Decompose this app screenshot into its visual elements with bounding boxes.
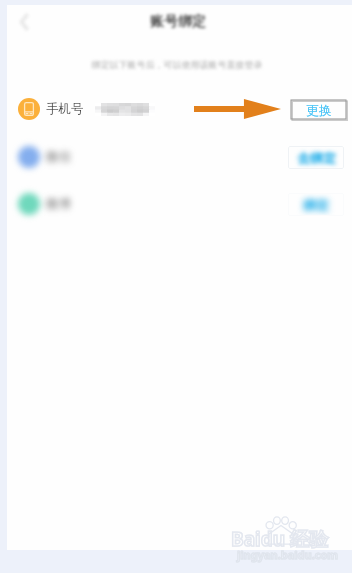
staticText: 绑定 [303, 197, 329, 213]
staticText: Baidu 经验 [231, 526, 328, 552]
staticText: jingyan.baidu.com [237, 547, 339, 562]
button[interactable]: 更换 [294, 98, 344, 121]
button[interactable]: 手机号 [7, 87, 352, 131]
staticText: 更换 [306, 102, 332, 118]
button[interactable]: 绑定 [288, 193, 344, 216]
staticText: 去绑定 [297, 150, 336, 166]
staticText: 微博 [46, 196, 71, 212]
staticText: 绑定以下账号后，可以使用该账号直接登录 [86, 59, 268, 70]
staticText: 账号绑定 [149, 13, 207, 31]
staticText: 手机号 [46, 101, 84, 117]
button[interactable]: Back [8, 5, 42, 39]
button[interactable]: 微信 [7, 135, 352, 179]
staticText: 微信 [46, 149, 71, 165]
button[interactable]: 去绑定 [288, 146, 344, 169]
button[interactable]: 微博 [7, 182, 352, 226]
